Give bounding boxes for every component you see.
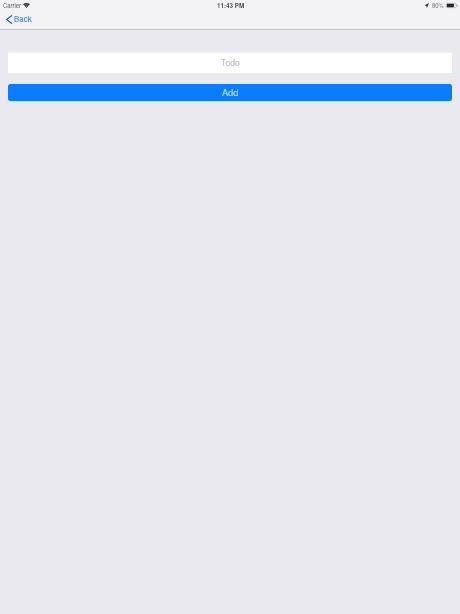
staticText: Todo — [221, 56, 240, 68]
staticText: 80% — [432, 1, 444, 9]
button[interactable]: Add — [8, 84, 452, 101]
staticText: Carrier — [3, 1, 21, 9]
staticText: Back — [14, 13, 32, 24]
staticText: 11:43 PM — [217, 1, 245, 10]
button[interactable]: Back — [4, 15, 34, 29]
button[interactable]: Todo — [8, 52, 452, 73]
staticText: Add — [222, 85, 239, 98]
